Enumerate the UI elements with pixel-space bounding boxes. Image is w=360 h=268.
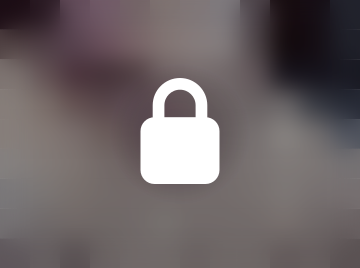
button[interactable]: Locked content [109, 63, 250, 204]
